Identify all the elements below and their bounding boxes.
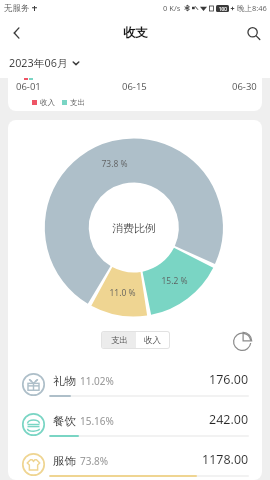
staticText: 消费比例 <box>112 221 156 235</box>
staticText: 06-15 <box>122 80 147 92</box>
button[interactable]: 餐饮 <box>8 404 262 444</box>
button[interactable]: Search <box>236 16 270 50</box>
staticText: 服饰 <box>53 454 76 468</box>
staticText: 无服务 <box>4 3 30 14</box>
staticText: 11.02% <box>80 374 114 388</box>
staticText: 06-01 <box>16 80 41 92</box>
staticText: 2023年06月 <box>9 55 68 70</box>
button[interactable]: Chart type <box>229 328 255 354</box>
staticText: 06-30 <box>232 80 257 92</box>
button[interactable]: 收入 <box>136 332 169 348</box>
staticText: 支出 <box>70 98 85 107</box>
staticText: 支出 <box>111 335 128 346</box>
staticText: 晚上8:46 <box>237 3 267 13</box>
staticText: 餐饮 <box>53 414 76 428</box>
staticText: 11.0 % <box>109 287 136 299</box>
staticText: 收入 <box>40 98 55 107</box>
staticText: 收入 <box>144 335 161 346</box>
staticText: 100 <box>219 6 227 12</box>
button[interactable]: Back <box>0 16 34 50</box>
staticText: 15.2 % <box>161 275 188 287</box>
staticText: 1178.00 <box>202 451 249 468</box>
staticText: 礼物 <box>53 374 76 388</box>
staticText: 73.8 % <box>101 158 128 170</box>
button[interactable]: 支出 <box>102 332 136 348</box>
staticText: 73.8% <box>80 454 109 468</box>
button[interactable]: 服饰 <box>8 444 262 480</box>
staticText: 242.00 <box>209 411 249 428</box>
button[interactable]: 礼物 <box>8 364 262 404</box>
button[interactable]: 2023年06月 <box>9 55 80 70</box>
staticText: 15.16% <box>80 414 114 428</box>
staticText: 0 K/s <box>163 3 181 13</box>
staticText: 176.00 <box>209 371 249 388</box>
staticText: 收支 <box>123 25 148 41</box>
